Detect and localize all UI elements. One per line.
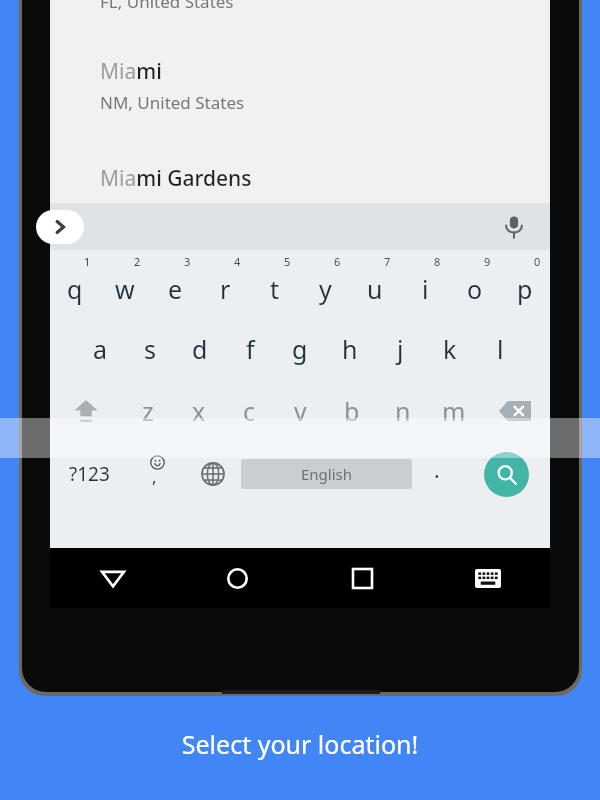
staticText: p: [517, 272, 533, 306]
button[interactable]: m: [428, 380, 479, 442]
button[interactable]: Miami: [50, 57, 550, 114]
button[interactable]: d: [175, 318, 225, 380]
staticText: 4: [234, 254, 241, 269]
staticText: 2: [134, 254, 141, 269]
staticText: .: [434, 456, 440, 485]
staticText: s: [144, 332, 156, 366]
button[interactable]: ?123: [50, 442, 129, 506]
button[interactable]: x: [173, 380, 224, 442]
staticText: v: [294, 394, 307, 428]
staticText: 9: [484, 254, 491, 269]
button[interactable]: English: [241, 459, 412, 489]
staticText: f: [246, 332, 255, 366]
button[interactable]: 4: [200, 250, 250, 318]
button[interactable]: 0: [500, 250, 550, 318]
staticText: ?123: [69, 461, 110, 487]
button[interactable]: h: [325, 318, 375, 380]
button[interactable]: Switch keyboard: [425, 548, 550, 608]
staticText: m: [442, 394, 466, 428]
button[interactable]: 2: [100, 250, 150, 318]
button[interactable]: FL, United States: [50, 0, 550, 13]
staticText: ,: [152, 465, 157, 488]
button[interactable]: g: [275, 318, 325, 380]
staticText: b: [344, 394, 360, 428]
staticText: u: [367, 272, 383, 306]
button[interactable]: Voice input: [494, 207, 534, 247]
button[interactable]: 7: [350, 250, 400, 318]
staticText: NM, United States: [100, 91, 245, 114]
button[interactable]: z: [122, 380, 173, 442]
button[interactable]: 1: [50, 250, 100, 318]
button[interactable]: Shift: [50, 380, 122, 442]
button[interactable]: 6: [300, 250, 350, 318]
button[interactable]: Miami Gardens: [50, 164, 550, 221]
button[interactable]: Expand suggestions: [36, 210, 84, 244]
button[interactable]: k: [425, 318, 475, 380]
staticText: w: [115, 272, 135, 306]
staticText: t: [270, 272, 280, 306]
staticText: l: [497, 332, 504, 366]
button[interactable]: s: [125, 318, 175, 380]
staticText: h: [342, 332, 358, 366]
staticText: 0: [534, 254, 541, 269]
staticText: Miami Gardens: [100, 164, 252, 193]
staticText: n: [395, 394, 411, 428]
button[interactable]: n: [377, 380, 428, 442]
staticText: a: [93, 332, 108, 366]
button[interactable]: 8: [400, 250, 450, 318]
staticText: y: [319, 272, 332, 306]
button[interactable]: 9: [450, 250, 500, 318]
button[interactable]: Back: [50, 548, 175, 608]
button[interactable]: .: [412, 442, 462, 506]
staticText: e: [168, 272, 183, 306]
button[interactable]: v: [275, 380, 326, 442]
staticText: 8: [434, 254, 441, 269]
button[interactable]: 3: [150, 250, 200, 318]
button[interactable]: Change language: [185, 442, 241, 506]
staticText: x: [192, 394, 206, 428]
staticText: c: [243, 394, 256, 428]
staticText: 3: [184, 254, 191, 269]
button[interactable]: a: [75, 318, 125, 380]
button[interactable]: Emoji: [129, 442, 185, 506]
button[interactable]: Backspace: [479, 380, 550, 442]
staticText: d: [192, 332, 208, 366]
button[interactable]: 5: [250, 250, 300, 318]
button[interactable]: j: [375, 318, 425, 380]
staticText: r: [220, 272, 231, 306]
staticText: Miami: [100, 57, 162, 86]
staticText: English: [301, 464, 353, 484]
staticText: z: [142, 394, 154, 428]
staticText: 6: [334, 254, 341, 269]
staticText: i: [422, 272, 429, 306]
staticText: g: [292, 332, 308, 366]
staticText: k: [443, 332, 457, 366]
staticText: FL, United States: [100, 0, 234, 13]
button[interactable]: c: [224, 380, 275, 442]
staticText: FL, United States: [100, 198, 234, 221]
staticText: o: [467, 272, 483, 306]
staticText: 1: [84, 254, 91, 269]
button[interactable]: l: [475, 318, 525, 380]
button[interactable]: f: [225, 318, 275, 380]
staticText: 5: [284, 254, 291, 269]
staticText: q: [67, 272, 83, 306]
staticText: j: [397, 332, 404, 366]
staticText: 7: [384, 254, 391, 269]
button[interactable]: b: [326, 380, 377, 442]
button[interactable]: Home: [175, 548, 300, 608]
button[interactable]: Search: [462, 442, 550, 506]
staticText: Select your location!: [0, 727, 600, 761]
button[interactable]: Recents: [300, 548, 425, 608]
